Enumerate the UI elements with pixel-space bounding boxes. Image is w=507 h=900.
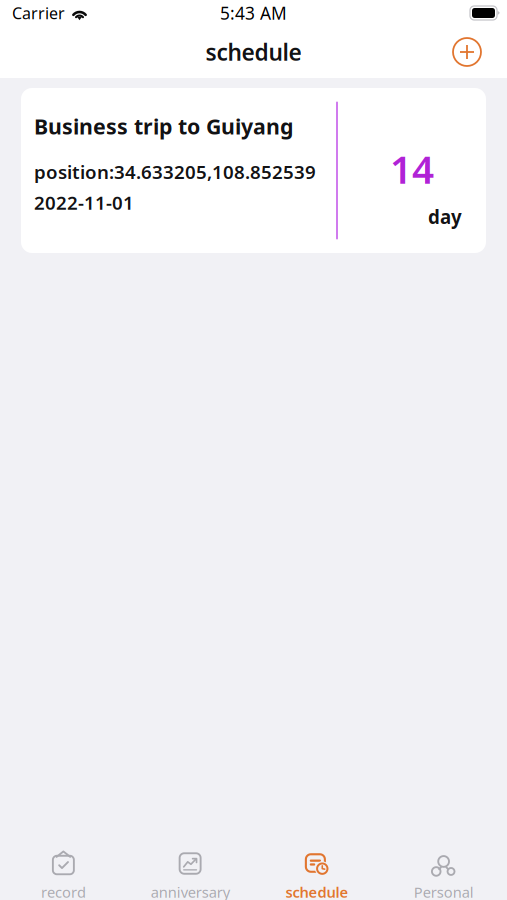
button[interactable]: Business trip to Guiyang	[21, 88, 486, 253]
button[interactable]: schedule	[253, 849, 380, 900]
staticText: 2022-11-01	[34, 190, 134, 215]
staticText: Personal	[414, 882, 474, 900]
button[interactable]: Add	[453, 38, 481, 66]
staticText: day	[428, 204, 462, 229]
button[interactable]: anniversary	[127, 849, 254, 900]
staticText: schedule	[285, 882, 348, 900]
staticText: Business trip to Guiyang	[34, 112, 293, 140]
staticText: Carrier	[12, 2, 65, 24]
staticText: schedule	[205, 37, 301, 67]
button[interactable]: Personal	[380, 849, 507, 900]
button[interactable]: record	[0, 849, 127, 900]
staticText: position:34.633205,108.852539	[34, 159, 316, 184]
staticText: 5:43 AM	[220, 1, 287, 24]
staticText: record	[41, 882, 86, 900]
staticText: anniversary	[151, 882, 230, 900]
staticText: 14	[390, 143, 434, 194]
